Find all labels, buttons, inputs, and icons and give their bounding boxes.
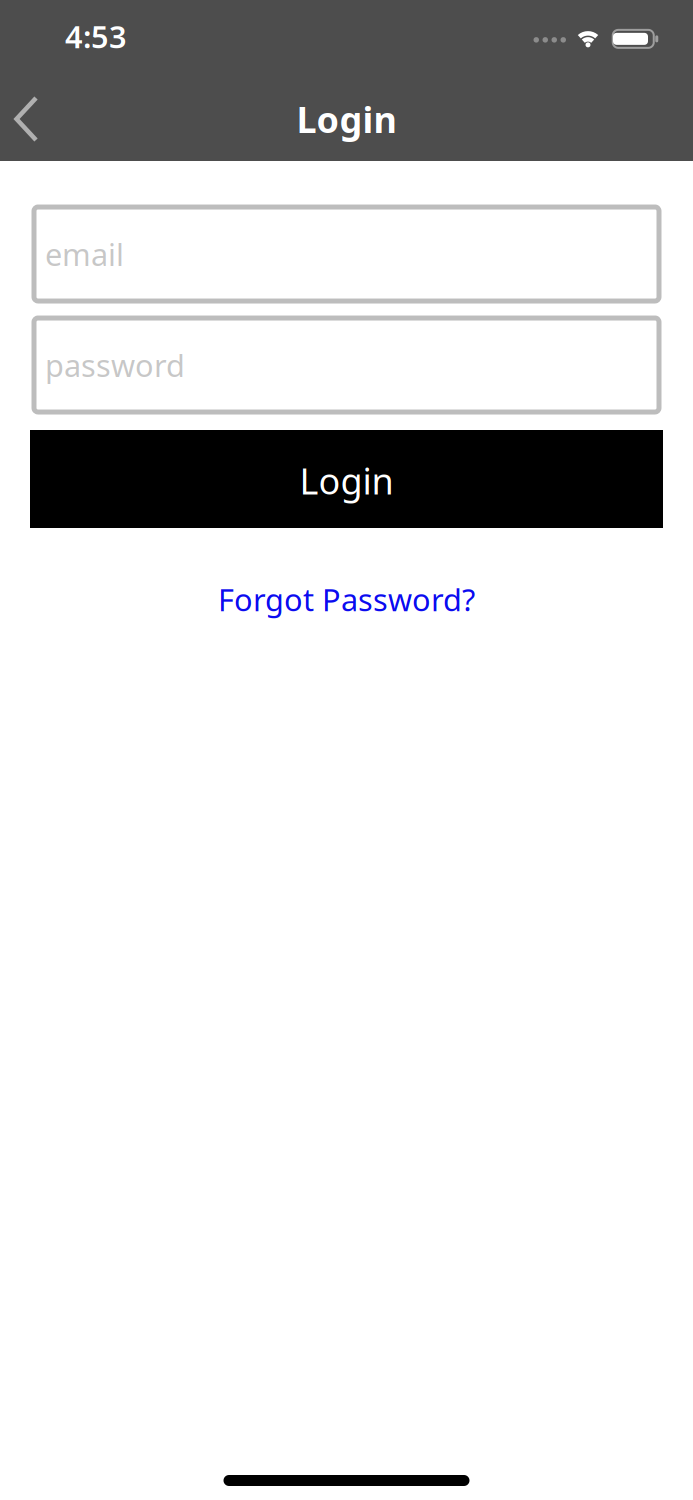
staticText: password xyxy=(45,345,185,385)
staticText: 4:53 xyxy=(65,16,127,57)
staticText: Forgot Password? xyxy=(218,579,475,620)
button[interactable]: Back xyxy=(0,88,59,150)
staticText: Login xyxy=(296,95,396,143)
button[interactable]: email xyxy=(34,207,659,301)
button[interactable]: Login xyxy=(30,430,663,528)
staticText: email xyxy=(45,234,124,274)
button[interactable]: password xyxy=(34,318,659,412)
staticText: Login xyxy=(299,457,393,504)
button[interactable]: Forgot Password? xyxy=(218,579,475,620)
